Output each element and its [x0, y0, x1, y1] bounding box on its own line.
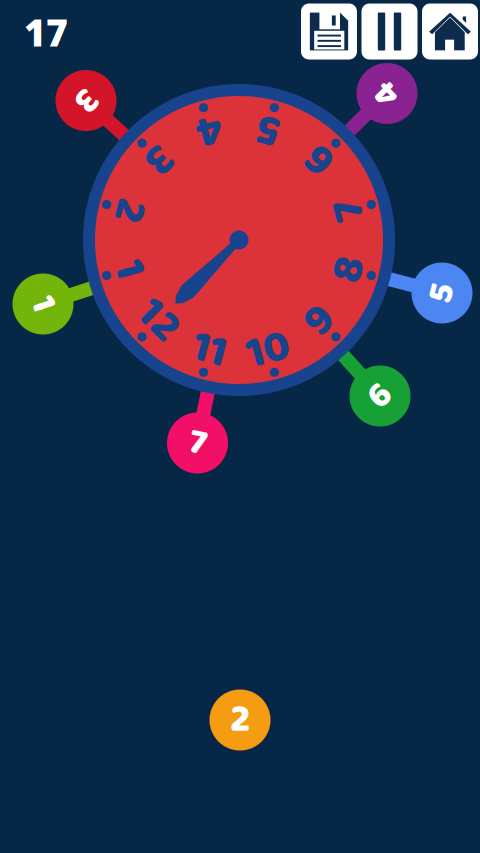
button[interactable]: 3 — [55, 70, 116, 131]
staticText: 4 — [376, 65, 398, 122]
button[interactable]: 2 — [209, 689, 270, 750]
staticText: 1 — [36, 275, 50, 333]
staticText: 10 — [246, 315, 290, 385]
staticText: 2 — [117, 175, 140, 246]
staticText: 7 — [189, 414, 206, 472]
staticText: 9 — [307, 285, 332, 356]
staticText: 8 — [337, 234, 362, 305]
staticText: 6 — [370, 367, 390, 425]
staticText: 5 — [432, 264, 451, 322]
button[interactable]: Pause — [361, 3, 417, 59]
button[interactable]: 7 — [167, 412, 228, 473]
staticText: 2 — [230, 689, 250, 751]
button[interactable]: Save — [301, 3, 357, 59]
button[interactable]: 1 — [12, 273, 73, 334]
staticText: 5 — [257, 95, 280, 165]
button[interactable]: 6 — [349, 365, 410, 426]
button[interactable]: Home — [422, 3, 478, 59]
staticText: 11 — [192, 315, 226, 385]
button[interactable]: 5 — [411, 262, 472, 323]
button[interactable]: 4 — [356, 63, 417, 124]
staticText: 3 — [147, 124, 170, 195]
staticText: 17 — [24, 7, 68, 57]
staticText: 12 — [138, 285, 179, 356]
staticText: 6 — [307, 124, 332, 195]
staticText: 3 — [76, 72, 95, 129]
staticText: 1 — [120, 234, 137, 305]
staticText: 7 — [339, 175, 360, 246]
staticText: 4 — [196, 95, 222, 165]
